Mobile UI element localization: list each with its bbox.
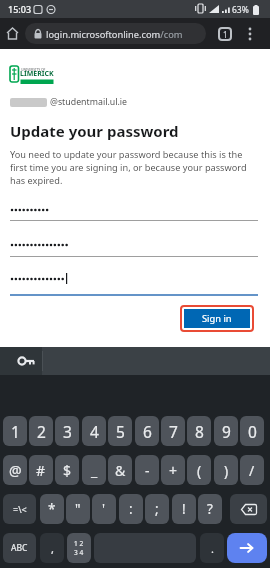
button[interactable]: " [66,494,90,524]
button[interactable]: 4 [82,416,106,446]
button[interactable]: * [40,494,64,524]
staticText: 15:03 [8,3,32,15]
button[interactable]: 8 [187,416,211,446]
button[interactable]: : [119,494,143,524]
staticText: 8 [195,421,204,442]
staticText: first time you are signing in, or becaus… [10,161,247,174]
button[interactable]: , [40,533,64,563]
staticText: & [115,461,126,480]
button[interactable]: 1 [3,416,27,446]
button[interactable] [245,27,255,41]
button[interactable]: login.microsoftonline.com/com [25,23,206,44]
staticText: 4 [90,421,99,442]
staticText: + [169,461,178,480]
staticText: . [211,541,214,556]
button[interactable] [0,347,42,375]
button[interactable]: - [135,455,159,485]
staticText: =\< [13,503,27,515]
staticText: / [249,461,255,480]
button[interactable]: ( [187,455,211,485]
button[interactable]: + [161,455,185,485]
staticText: 1 2 [74,539,84,548]
staticText: 0 [248,421,257,442]
staticText: _ [91,461,98,480]
button[interactable]: @ [3,455,27,485]
staticText: 63% [232,4,249,16]
staticText: # [36,461,46,480]
button[interactable]: 0 [240,416,264,446]
staticText: 5 [116,421,125,442]
button[interactable]: Sign in [184,309,250,328]
staticText: ABC [11,542,28,554]
staticText: Update your password [10,121,179,141]
staticText: " [75,500,81,518]
staticText: login.microsoftonline.com/com [46,28,183,41]
staticText: 6 [143,421,152,442]
button[interactable]: 1 2 [67,533,91,563]
button[interactable]: 3 [55,416,79,446]
button[interactable]: =\< [3,494,36,524]
button[interactable]: 2 [29,416,53,446]
staticText: ; [155,500,159,518]
staticText: - [145,461,150,480]
staticText: $ [63,461,72,480]
button[interactable]: ABC [3,533,36,563]
staticText: , [51,541,54,556]
staticText: You need to update your password because… [10,148,243,161]
button[interactable]: 6 [135,416,159,446]
staticText: LIMERICK [20,69,54,79]
button[interactable]: . [200,533,224,563]
button[interactable]: / [240,455,264,485]
staticText: 3 [63,421,72,442]
button[interactable]: ) [214,455,238,485]
button[interactable]: ' [92,494,116,524]
staticText: ) [224,461,229,480]
staticText: Sign in [202,312,232,325]
button[interactable]: ; [145,494,169,524]
button[interactable] [230,494,267,524]
staticText: 9 [222,421,231,442]
staticText: ! [182,500,186,518]
button[interactable]: $ [55,455,79,485]
button[interactable]: ? [198,494,222,524]
button[interactable]: 5 [108,416,132,446]
staticText: : [129,500,133,518]
staticText: 3 4 [74,548,84,557]
button[interactable]: 7 [161,416,185,446]
button[interactable]: & [108,455,132,485]
staticText: 1 [223,29,228,40]
staticText: 1 [11,421,20,442]
staticText: 7 [169,421,178,442]
staticText: ' [102,500,106,518]
button[interactable]: 9 [214,416,238,446]
staticText: @studentmail.ul.ie [50,96,128,108]
button[interactable]: ! [172,494,196,524]
staticText: 2 [37,421,46,442]
button[interactable] [227,533,267,563]
staticText: ? [207,500,213,518]
button[interactable]: # [29,455,53,485]
staticText: @ [9,461,22,480]
staticText: has expired. [10,174,63,187]
staticText: UNIVERSITY OF [21,67,46,72]
staticText: ( [197,461,202,480]
button[interactable] [6,27,19,40]
button[interactable]: 1 [218,27,232,41]
button[interactable]: _ [82,455,106,485]
staticText: * [48,500,56,518]
